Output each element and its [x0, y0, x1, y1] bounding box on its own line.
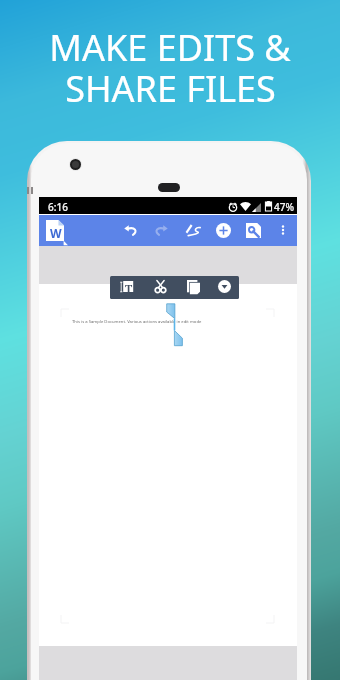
other: Add	[216, 223, 231, 238]
staticText: 47%	[274, 200, 294, 214]
staticText: SHARE FILES	[65, 64, 276, 113]
button[interactable]: Undo	[121, 220, 141, 240]
button[interactable]: Cut	[150, 276, 182, 299]
button[interactable]: Format text	[118, 276, 150, 299]
other: Redo	[153, 222, 169, 238]
other: Signature	[185, 222, 201, 238]
button[interactable]: More options	[273, 220, 293, 240]
button[interactable]: More actions	[214, 276, 239, 299]
staticText: W	[50, 225, 62, 241]
button[interactable]: Tools	[243, 220, 263, 240]
staticText: MAKE EDITS &	[49, 23, 291, 72]
other: Tools	[246, 223, 261, 238]
other: More options	[276, 223, 290, 237]
button[interactable]: Redo	[151, 220, 171, 240]
staticText: This is a Sample Document. Various actio…	[72, 319, 202, 325]
other: Format text	[120, 281, 134, 294]
button[interactable]: Add	[213, 220, 233, 240]
other: Copy	[187, 280, 200, 295]
other: More actions	[218, 280, 231, 293]
other: Undo	[123, 222, 139, 238]
button[interactable]: Document	[46, 220, 70, 246]
staticText: 6:16	[48, 200, 68, 214]
other: Cut	[155, 280, 166, 293]
button[interactable]: Signature	[183, 220, 203, 240]
staticText: T	[125, 281, 133, 294]
button[interactable]: Copy	[182, 276, 214, 299]
